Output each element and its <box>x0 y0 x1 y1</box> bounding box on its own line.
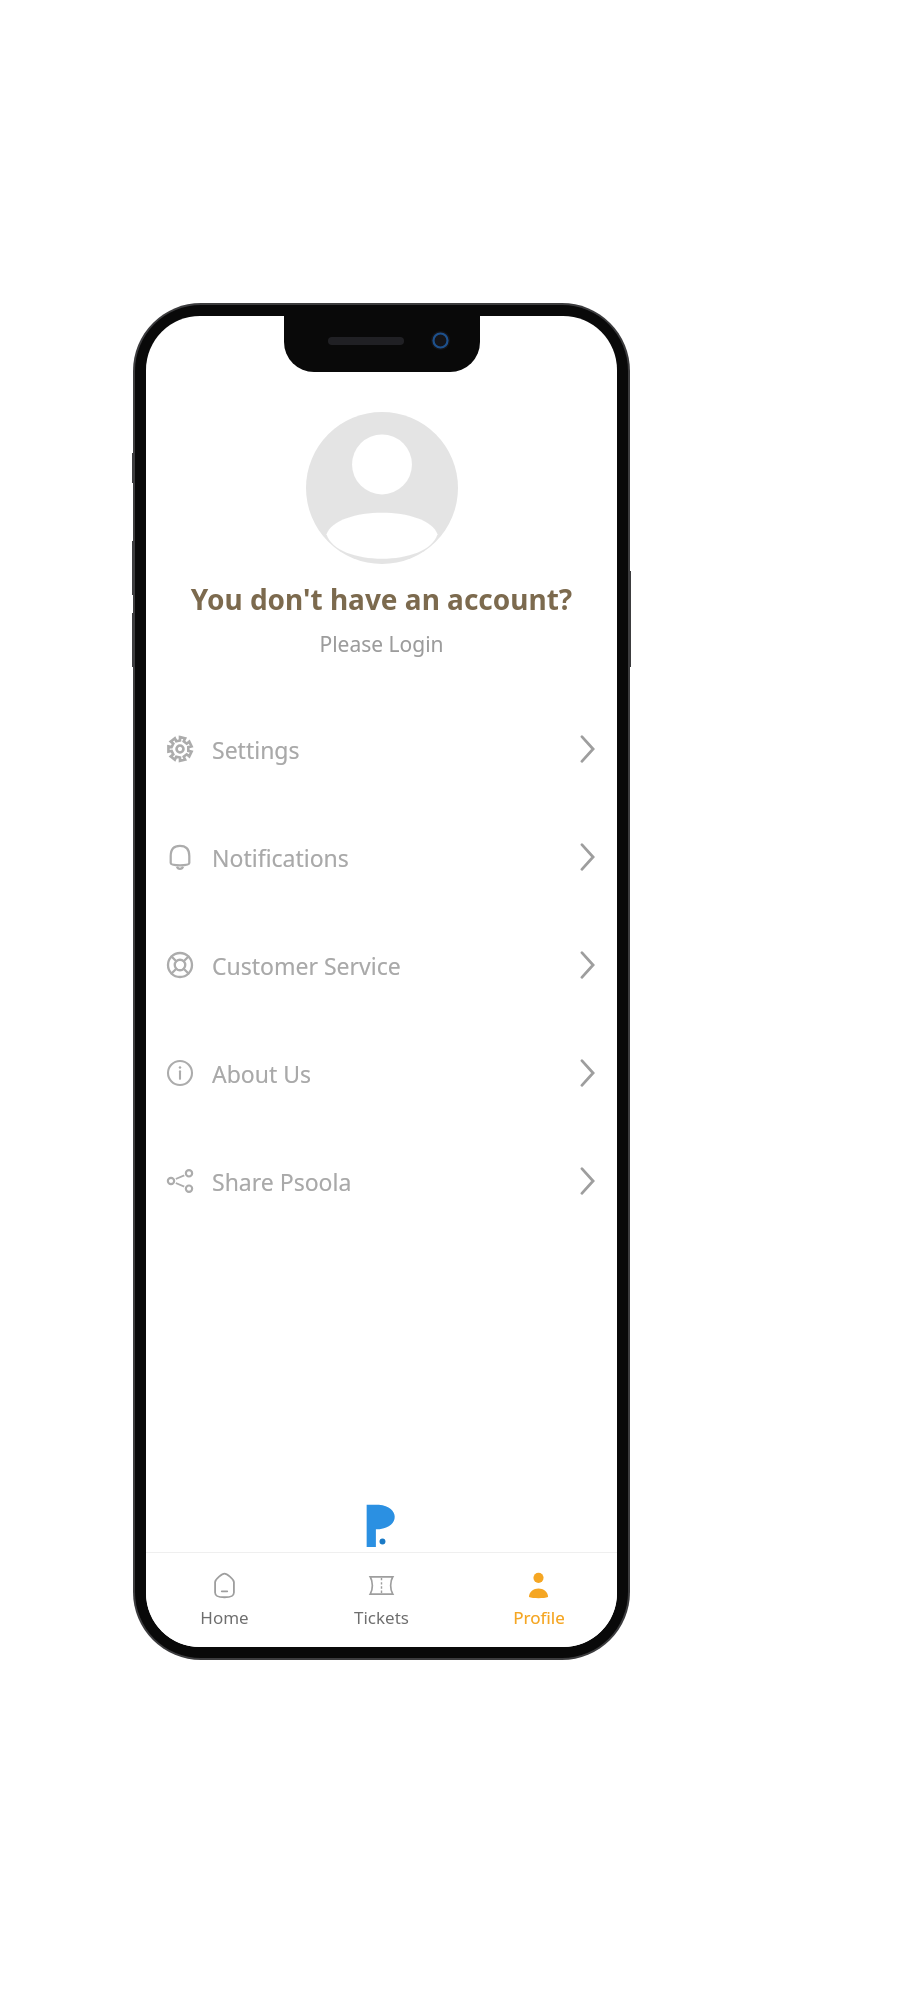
button[interactable]: Notifications <box>146 803 617 911</box>
staticText: Please Login <box>146 630 617 659</box>
other: Home <box>210 1571 239 1600</box>
button[interactable]: Tickets <box>303 1553 460 1647</box>
button[interactable]: Settings <box>146 695 617 803</box>
staticText: Home <box>200 1606 249 1629</box>
other: Profile <box>524 1571 553 1600</box>
staticText: Profile <box>513 1606 565 1629</box>
staticText: Tickets <box>354 1606 409 1629</box>
staticText: About Us <box>212 1058 312 1089</box>
button[interactable]: Customer Service <box>146 911 617 1019</box>
staticText: Share Psoola <box>212 1166 352 1197</box>
staticText: Customer Service <box>212 950 401 981</box>
button[interactable]: Home <box>146 1553 303 1647</box>
button[interactable]: Share Psoola <box>146 1127 617 1235</box>
button[interactable]: Profile <box>460 1553 617 1647</box>
staticText: Settings <box>212 734 300 765</box>
staticText: Notifications <box>212 842 349 873</box>
staticText: You don't have an account? <box>146 580 617 618</box>
button[interactable]: About Us <box>146 1019 617 1127</box>
other: Tickets <box>367 1571 396 1600</box>
